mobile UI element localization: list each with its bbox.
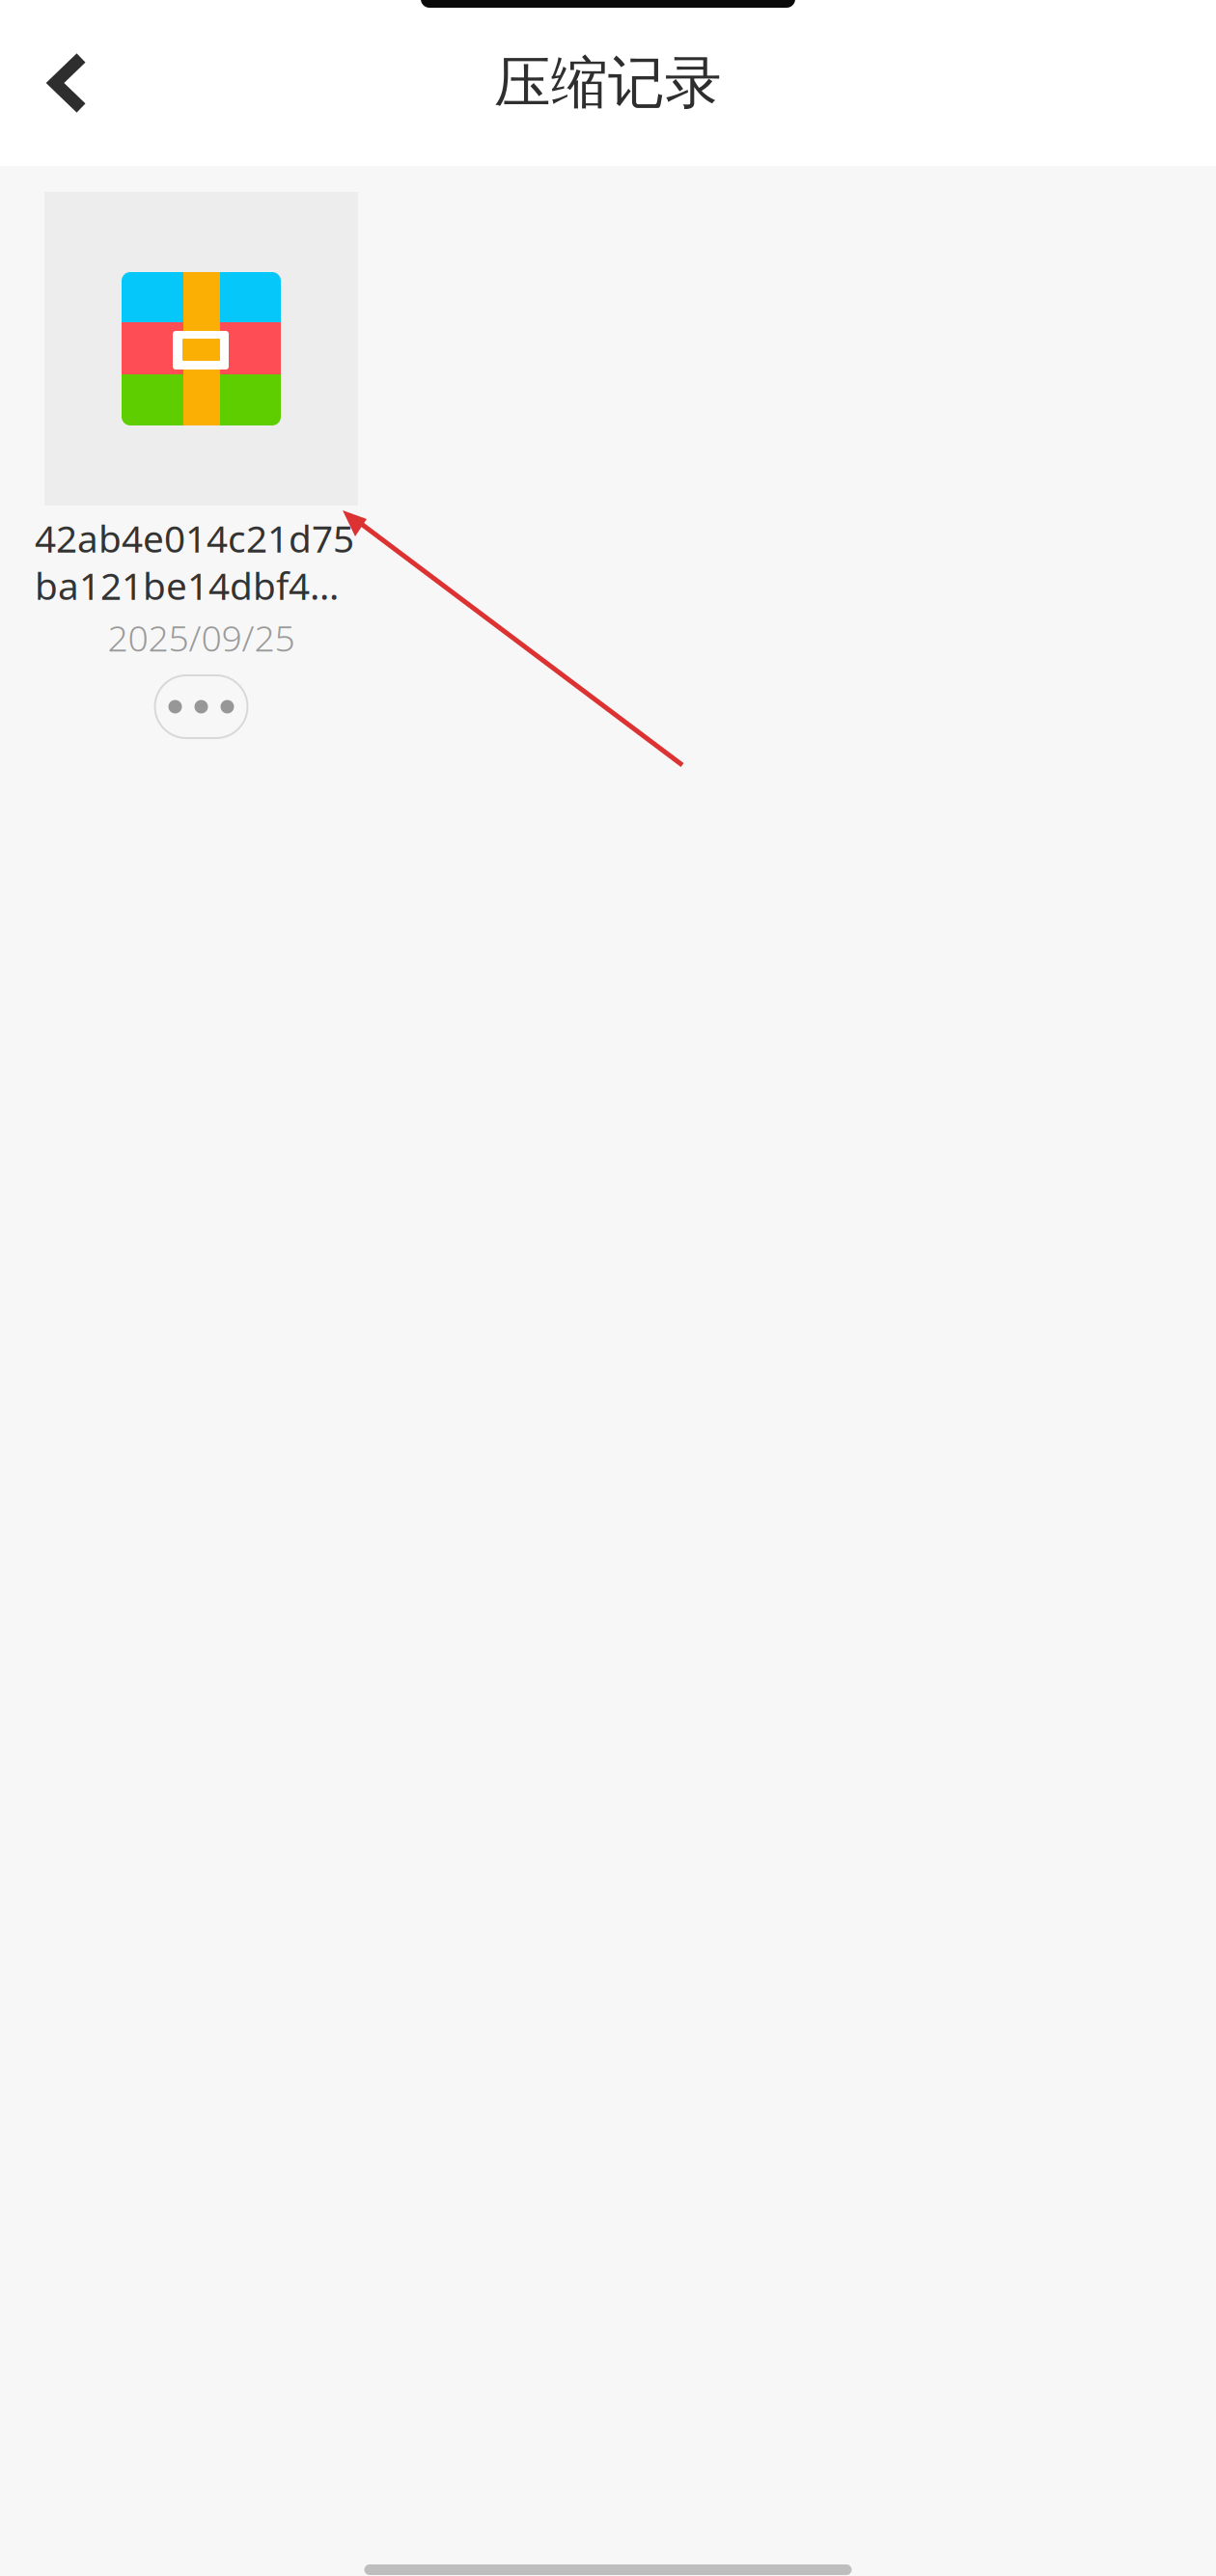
staticText: ba121be14dbf4...: [35, 561, 339, 610]
staticText: 压缩记录: [494, 48, 722, 118]
button[interactable]: Back: [9, 25, 124, 141]
staticText: 42ab4e014c21d75: [35, 513, 354, 563]
button[interactable]: More options: [155, 675, 248, 738]
button[interactable]: 42ab4e014c21d75: [44, 192, 373, 761]
staticText: 2025/09/25: [108, 614, 295, 661]
